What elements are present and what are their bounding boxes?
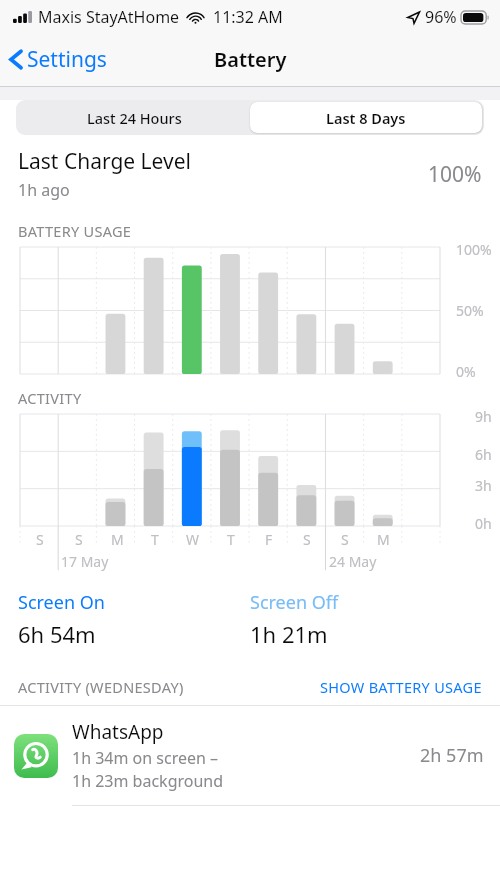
staticText: 2h 57m xyxy=(420,743,484,768)
staticText: SHOW BATTERY USAGE xyxy=(320,677,482,697)
staticText: 96% xyxy=(425,6,457,28)
staticText: 3h xyxy=(475,476,492,495)
staticText: W xyxy=(186,530,200,549)
staticText: BATTERY USAGE xyxy=(18,221,132,241)
staticText: M xyxy=(377,530,390,549)
staticText: 17 May xyxy=(61,552,109,571)
staticText: 1h 34m on screen – xyxy=(72,747,219,769)
staticText: Last 24 Hours xyxy=(87,108,182,128)
staticText: 1h 23m background xyxy=(72,770,224,792)
staticText: S xyxy=(75,530,83,549)
staticText: Last Charge Level xyxy=(18,147,191,176)
staticText: WhatsApp xyxy=(72,719,164,745)
staticText: 0h xyxy=(475,514,492,533)
staticText: Settings xyxy=(27,45,107,74)
staticText: 100% xyxy=(456,240,492,259)
staticText: 24 May xyxy=(329,552,377,571)
other: Back to Settings xyxy=(9,48,23,71)
button[interactable]: WhatsApp xyxy=(0,706,500,806)
staticText: S xyxy=(341,530,349,549)
button[interactable]: Back to Settings xyxy=(0,37,117,82)
staticText: F xyxy=(265,530,273,549)
staticText: Maxis StayAtHome xyxy=(38,6,180,28)
staticText: 6h xyxy=(475,445,492,464)
button[interactable]: Last 8 Days xyxy=(250,102,482,133)
staticText: 11:32 AM xyxy=(213,6,283,28)
staticText: Screen On xyxy=(18,590,105,615)
staticText: 100% xyxy=(428,160,482,189)
staticText: 6h 54m xyxy=(18,619,96,649)
staticText: M xyxy=(111,530,124,549)
staticText: 1h 21m xyxy=(250,619,328,649)
staticText: S xyxy=(303,530,311,549)
staticText: ACTIVITY (WEDNESDAY) xyxy=(18,677,184,697)
button[interactable]: Last 24 Hours xyxy=(18,102,250,133)
staticText: 9h xyxy=(475,407,492,426)
staticText: T xyxy=(151,530,159,549)
staticText: ACTIVITY xyxy=(18,388,82,408)
staticText: 50% xyxy=(456,301,484,320)
staticText: Last 8 Days xyxy=(326,108,406,128)
staticText: Battery xyxy=(214,46,287,73)
staticText: S xyxy=(36,530,44,549)
staticText: 0% xyxy=(456,362,476,381)
button[interactable]: SHOW BATTERY USAGE xyxy=(320,677,482,697)
staticText: 1h ago xyxy=(18,179,70,201)
staticText: T xyxy=(227,530,235,549)
staticText: Screen Off xyxy=(250,590,339,615)
